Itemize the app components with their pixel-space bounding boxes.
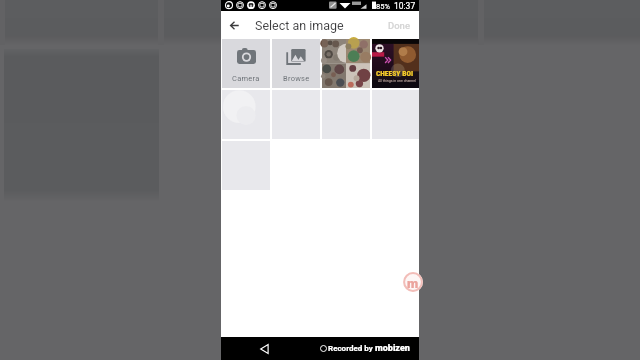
staticText: Camera	[232, 74, 260, 83]
button[interactable]: Navigate up	[222, 13, 246, 37]
button[interactable]: Camera	[222, 39, 270, 88]
staticText: CHEESY BOI	[376, 69, 414, 78]
staticText: Recorded by	[328, 344, 375, 353]
button[interactable]: Done	[377, 14, 419, 37]
staticText: m	[407, 276, 419, 291]
button[interactable]	[322, 39, 370, 88]
staticText: 85%	[376, 2, 390, 11]
staticText: 10:37	[394, 1, 416, 11]
button[interactable]	[222, 90, 270, 139]
button[interactable]: CHEESY BOI	[372, 39, 419, 88]
staticText: mobizen	[375, 343, 410, 354]
staticText: Done	[388, 20, 410, 31]
staticText: Select an image	[255, 18, 344, 33]
staticText: Browse	[283, 74, 310, 83]
staticText: All things in one channel	[378, 79, 416, 83]
button[interactable]: Browse	[272, 39, 320, 88]
button[interactable]: Back	[254, 339, 274, 359]
